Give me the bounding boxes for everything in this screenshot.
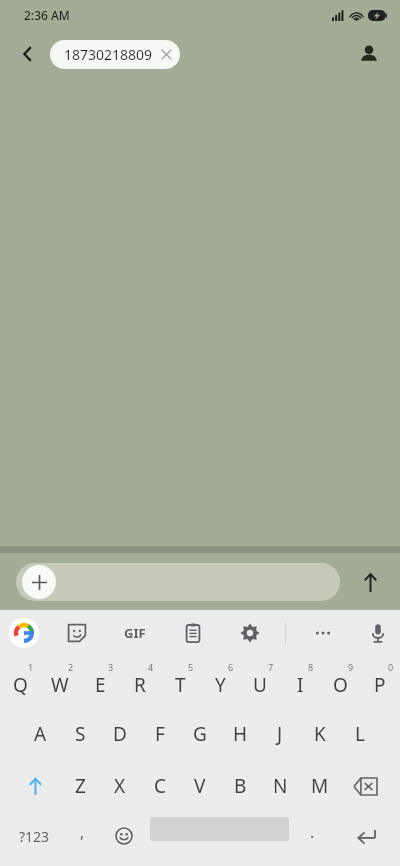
- button[interactable]: A: [20, 708, 60, 760]
- staticText: Y: [215, 672, 226, 698]
- staticText: 7: [268, 661, 274, 673]
- button[interactable]: I: [280, 656, 320, 708]
- staticText: 0: [388, 661, 394, 673]
- button[interactable]: Contact: [350, 35, 388, 73]
- staticText: E: [95, 672, 106, 698]
- staticText: S: [75, 721, 86, 747]
- button[interactable]: Emoji: [102, 812, 146, 860]
- button[interactable]: Enter: [340, 812, 392, 860]
- button[interactable]: Send: [350, 562, 390, 602]
- staticText: I: [297, 672, 304, 698]
- staticText: 2:36 AM: [24, 7, 70, 23]
- staticText: C: [154, 773, 167, 799]
- button[interactable]: J: [260, 708, 300, 760]
- staticText: F: [155, 721, 165, 747]
- staticText: 9: [348, 661, 354, 673]
- staticText: H: [233, 721, 248, 747]
- button[interactable]: Shift: [10, 760, 60, 812]
- button[interactable]: Google: [9, 618, 39, 648]
- button[interactable]: R: [120, 656, 160, 708]
- staticText: T: [175, 672, 186, 698]
- button[interactable]: E: [80, 656, 120, 708]
- button[interactable]: C: [140, 760, 180, 812]
- button[interactable]: H: [220, 708, 260, 760]
- staticText: 18730218809: [64, 45, 153, 64]
- button[interactable]: F: [140, 708, 180, 760]
- button[interactable]: Attach: [22, 565, 56, 599]
- button[interactable]: ?123: [4, 812, 64, 860]
- staticText: R: [134, 672, 146, 698]
- staticText: P: [374, 672, 386, 698]
- staticText: X: [114, 773, 126, 799]
- button[interactable]: P: [360, 656, 400, 708]
- staticText: Q: [13, 672, 28, 698]
- staticText: GIF: [124, 624, 146, 642]
- staticText: 8: [308, 661, 314, 673]
- staticText: 2: [68, 661, 74, 673]
- button[interactable]: B: [220, 760, 260, 812]
- staticText: Z: [75, 773, 86, 799]
- staticText: .: [310, 821, 315, 843]
- button[interactable]: N: [260, 760, 300, 812]
- button[interactable]: G: [180, 708, 220, 760]
- button[interactable]: Q: [0, 656, 40, 708]
- staticText: G: [193, 721, 207, 747]
- staticText: A: [34, 721, 47, 747]
- staticText: K: [314, 721, 326, 747]
- button[interactable]: Stickers: [61, 617, 93, 649]
- staticText: ,: [80, 821, 85, 843]
- button[interactable]: 18730218809: [50, 40, 180, 69]
- staticText: M: [311, 773, 329, 799]
- staticText: 3: [108, 661, 114, 673]
- button[interactable]: ,: [62, 812, 102, 860]
- staticText: D: [113, 721, 127, 747]
- button[interactable]: Back: [10, 36, 46, 72]
- button[interactable]: Settings: [234, 617, 266, 649]
- button[interactable]: More: [307, 617, 339, 649]
- staticText: N: [273, 773, 288, 799]
- staticText: B: [234, 773, 247, 799]
- button[interactable]: .: [292, 812, 332, 860]
- button[interactable]: L: [340, 708, 380, 760]
- button[interactable]: X: [100, 760, 140, 812]
- staticText: 6: [228, 661, 234, 673]
- staticText: 5: [188, 661, 194, 673]
- button[interactable]: M: [300, 760, 340, 812]
- button[interactable]: K: [300, 708, 340, 760]
- button[interactable]: U: [240, 656, 280, 708]
- button[interactable]: Backspace: [340, 760, 390, 812]
- button[interactable]: [16, 563, 340, 601]
- staticText: ?123: [19, 827, 50, 846]
- button[interactable]: O: [320, 656, 360, 708]
- button[interactable]: T: [160, 656, 200, 708]
- button[interactable]: Z: [60, 760, 100, 812]
- button[interactable]: D: [100, 708, 140, 760]
- staticText: U: [253, 672, 267, 698]
- button[interactable]: Clipboard: [177, 617, 209, 649]
- button[interactable]: GIF: [119, 617, 151, 649]
- staticText: W: [51, 672, 69, 698]
- button[interactable]: Voice input: [362, 617, 394, 649]
- staticText: J: [277, 721, 283, 747]
- button[interactable]: W: [40, 656, 80, 708]
- staticText: V: [194, 773, 206, 799]
- button[interactable]: V: [180, 760, 220, 812]
- staticText: 4: [148, 661, 154, 673]
- button[interactable]: S: [60, 708, 100, 760]
- staticText: 1: [28, 661, 34, 673]
- staticText: L: [355, 721, 365, 747]
- button[interactable]: Y: [200, 656, 240, 708]
- staticText: O: [333, 672, 348, 698]
